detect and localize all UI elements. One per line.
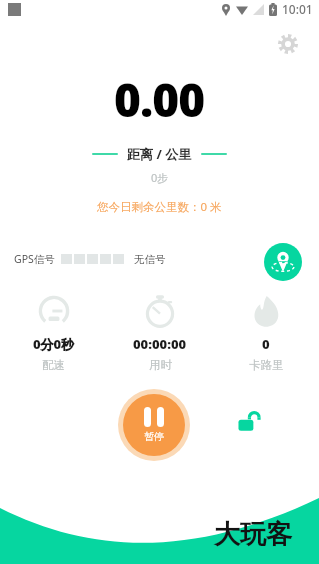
button[interactable]: 暂停 (118, 389, 190, 461)
staticText: 0步 (151, 170, 169, 185)
staticText: 配速 (42, 358, 65, 372)
staticText: 大玩客 (214, 518, 292, 551)
staticText: GPS信号 (14, 252, 55, 266)
staticText: 卡路里 (249, 358, 284, 372)
staticText: 您今日剩余公里数：0 米 (97, 199, 222, 215)
staticText: 00:00:00 (133, 335, 187, 353)
staticText: 0分0秒 (33, 335, 75, 353)
button[interactable]: 0 (213, 294, 319, 372)
staticText: 0.00 (114, 68, 205, 131)
staticText: 0 (262, 335, 270, 353)
staticText: 暂停 (144, 430, 164, 443)
button[interactable]: 00:00:00 (107, 294, 213, 372)
button[interactable]: Settings (272, 28, 304, 60)
button[interactable]: 0分0秒 (0, 294, 107, 372)
staticText: 10:01 (282, 1, 313, 17)
staticText: 无信号 (134, 253, 166, 266)
staticText: 距离 / 公里 (127, 145, 192, 163)
button[interactable]: Locate (264, 243, 302, 281)
staticText: 用时 (149, 358, 172, 372)
button[interactable]: Unlock (232, 403, 268, 439)
